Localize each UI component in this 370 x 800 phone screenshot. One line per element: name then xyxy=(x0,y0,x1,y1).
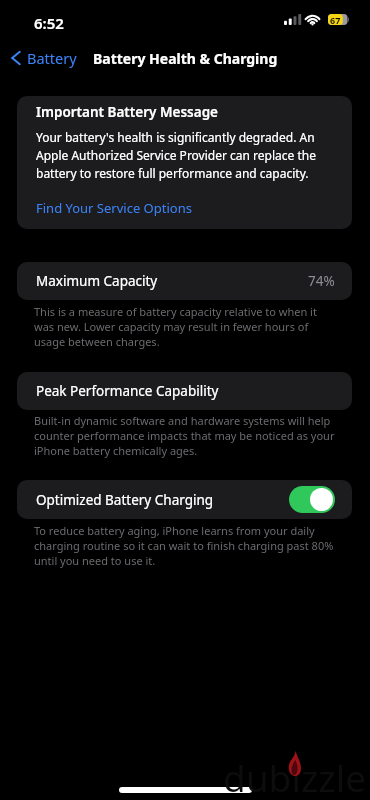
staticText: 67 xyxy=(330,14,341,25)
staticText: Peak Performance Capability xyxy=(36,382,219,400)
staticText: Built-in dynamic software and hardware s… xyxy=(34,413,336,458)
staticText: Battery xyxy=(27,48,77,68)
staticText: Your battery's health is significantly d… xyxy=(36,129,321,182)
staticText: 6:52 xyxy=(34,13,64,33)
staticText: Battery Health & Charging xyxy=(93,49,278,68)
button[interactable]: Back to Battery xyxy=(6,44,82,72)
staticText: To reduce battery aging, iPhone learns f… xyxy=(34,523,336,568)
staticText: dubizzle xyxy=(223,752,367,800)
button[interactable]: Find Your Service Options xyxy=(36,199,192,217)
button[interactable]: Optimized Battery Charging toggle xyxy=(289,486,335,513)
staticText: 74% xyxy=(308,272,335,290)
button[interactable]: Maximum Capacity xyxy=(17,262,352,300)
staticText: This is a measure of battery capacity re… xyxy=(34,304,336,349)
button[interactable]: Optimized Battery Charging xyxy=(17,480,352,519)
button[interactable]: Peak Performance Capability xyxy=(17,372,352,410)
staticText: Maximum Capacity xyxy=(36,272,158,290)
staticText: Important Battery Message xyxy=(36,103,218,121)
staticText: Optimized Battery Charging xyxy=(36,491,214,509)
